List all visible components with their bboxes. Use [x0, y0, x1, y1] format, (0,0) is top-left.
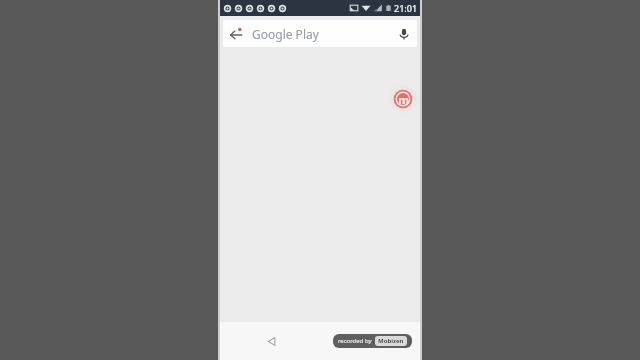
staticText: 21:01 [394, 2, 418, 14]
staticText: recorded by [338, 337, 372, 345]
button[interactable]: Back [223, 20, 417, 47]
staticText: Mobizen [378, 337, 404, 345]
staticText: Google Play [252, 26, 319, 42]
button[interactable]: Back [223, 21, 249, 47]
button[interactable]: Voice search [391, 21, 417, 47]
staticText: m [398, 92, 409, 107]
button[interactable]: Back [258, 328, 284, 354]
